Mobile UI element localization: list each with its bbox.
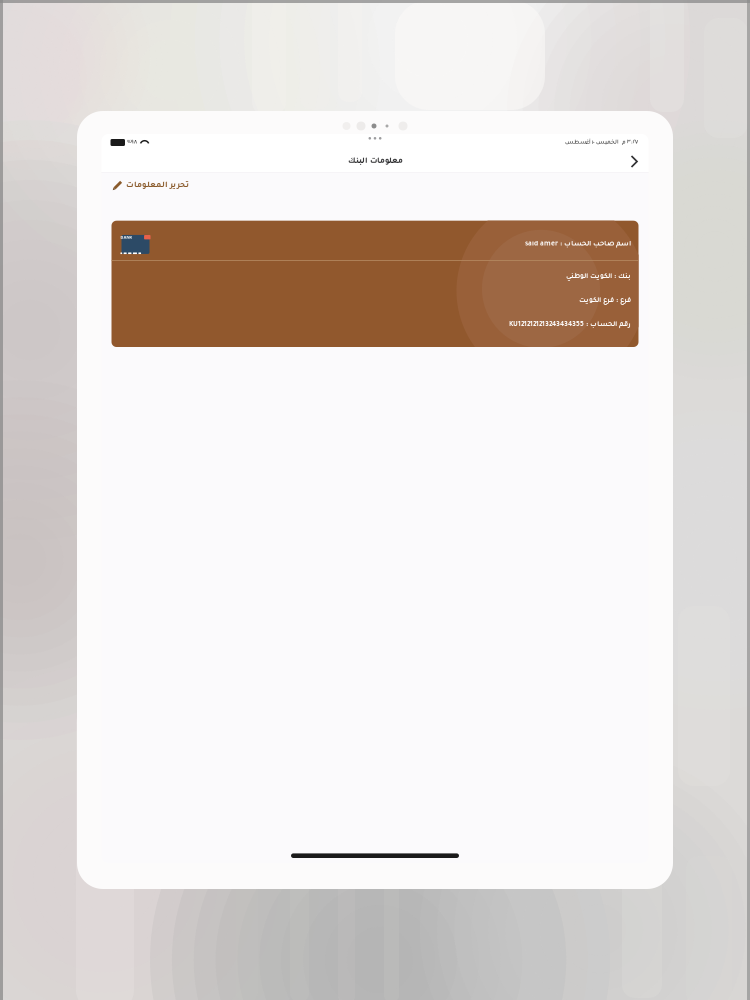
staticText: BANK [120,235,132,240]
staticText: اسم صاحب الحساب : said amer [524,241,630,248]
staticText: تحرير المعلومات [125,181,188,190]
button[interactable]: Back [625,151,643,172]
staticText: معلومات البنك [347,157,402,166]
staticText: فرع : فرع الكويت [578,297,630,305]
staticText: ٣:٢٧ م الخميس ١٠ أغسطس [564,139,637,145]
staticText: بنك : الكويت الوطني [565,273,630,281]
staticText: ٪٩٨ [127,139,137,145]
button[interactable]: تحرير المعلومات [112,173,188,199]
staticText: رقم الحساب : KU1212121213243434355 [508,321,630,329]
